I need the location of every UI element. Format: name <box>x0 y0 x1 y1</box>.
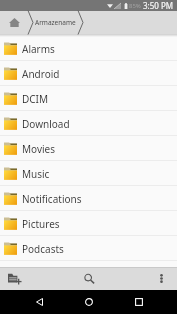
button[interactable]: Home <box>0 11 28 34</box>
staticText: Pictures <box>22 217 60 231</box>
staticText: Podcasts <box>22 242 64 256</box>
staticText: Android <box>22 67 60 81</box>
staticText: 85% <box>129 2 141 10</box>
button[interactable]: Pictures <box>0 211 177 236</box>
staticText: Music <box>22 167 50 181</box>
staticText: Notifications <box>22 192 82 206</box>
button[interactable]: New folder <box>0 267 29 290</box>
button[interactable]: Home <box>64 290 114 314</box>
staticText: Movies <box>22 142 56 156</box>
button[interactable]: Android <box>0 61 177 86</box>
button[interactable]: Back <box>14 290 64 314</box>
staticText: Armazename <box>35 18 76 27</box>
staticText: DCIM <box>22 92 49 106</box>
button[interactable]: Notifications <box>0 186 177 211</box>
button[interactable]: Music <box>0 161 177 186</box>
button[interactable]: Podcasts <box>0 236 177 261</box>
button[interactable]: Alarms <box>0 36 177 61</box>
button[interactable]: Armazename <box>33 11 78 34</box>
button[interactable]: Movies <box>0 136 177 161</box>
staticText: Alarms <box>22 42 55 56</box>
staticText: Download <box>22 117 70 131</box>
staticText: 3:50 PM <box>143 0 174 11</box>
button[interactable]: Download <box>0 111 177 136</box>
button[interactable]: DCIM <box>0 86 177 111</box>
button[interactable]: More options <box>150 267 172 290</box>
button[interactable]: Search <box>77 267 101 290</box>
button[interactable]: Recent apps <box>114 290 164 314</box>
